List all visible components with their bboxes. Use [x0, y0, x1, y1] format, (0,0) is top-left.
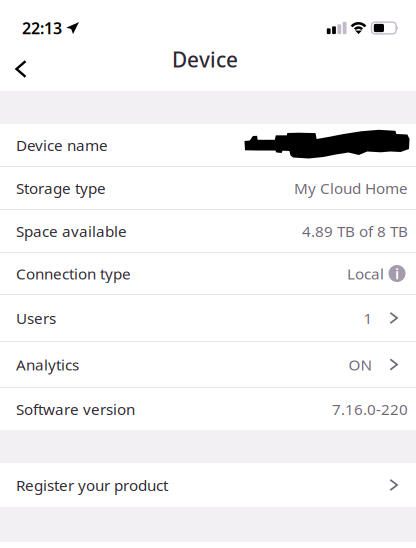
- staticText: 1: [363, 308, 372, 328]
- button[interactable]: Connection type info: [384, 256, 410, 290]
- staticText: Local: [347, 263, 384, 284]
- staticText: ON: [348, 354, 372, 375]
- staticText: My Cloud Home: [294, 178, 408, 198]
- staticText: Users: [16, 308, 56, 328]
- button[interactable]: Back: [0, 47, 42, 91]
- staticText: 7.16.0-220: [332, 399, 408, 419]
- staticText: Software version: [16, 399, 135, 419]
- button[interactable]: Analytics: [0, 342, 416, 387]
- staticText: 4.89 TB of 8 TB: [302, 221, 408, 241]
- staticText: Device: [172, 45, 238, 74]
- staticText: 22:13: [22, 17, 62, 39]
- staticText: Space available: [16, 221, 127, 241]
- staticText: Analytics: [16, 354, 79, 375]
- button[interactable]: Register your product: [0, 463, 416, 507]
- staticText: Connection type: [16, 263, 131, 284]
- staticText: Device name: [16, 135, 108, 155]
- button[interactable]: Users: [0, 295, 416, 341]
- staticText: i: [395, 264, 399, 283]
- staticText: Storage type: [16, 178, 106, 198]
- staticText: Register your product: [16, 475, 168, 495]
